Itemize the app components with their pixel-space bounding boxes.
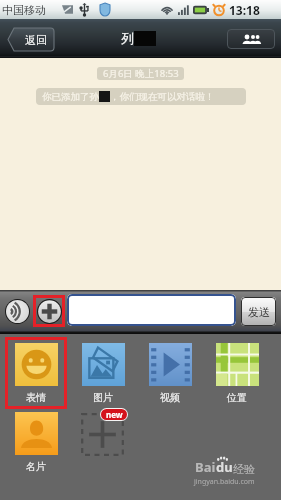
staticText: jingyan.baidu.com <box>194 477 255 487</box>
staticText: ，你们现在可以对话啦！ <box>110 91 215 103</box>
staticText: 视频 <box>160 391 180 404</box>
button[interactable]: Add shortcut <box>81 413 124 456</box>
staticText: 发送 <box>248 305 270 319</box>
button[interactable]: Voice message <box>5 299 30 324</box>
staticText: 13:18 <box>229 2 260 18</box>
button[interactable]: 表情 <box>5 343 67 404</box>
staticText: new <box>106 409 123 420</box>
staticText: 表情 <box>26 391 46 404</box>
button[interactable]: 位置 <box>206 343 268 404</box>
button[interactable]: 名片 <box>5 412 67 473</box>
staticText: 中国移动 <box>2 3 46 17</box>
staticText: 6月6日 晚上18:53 <box>103 67 179 80</box>
staticText: 位置 <box>227 391 247 404</box>
staticText: 列 <box>121 30 134 46</box>
button[interactable]: 视频 <box>139 343 201 404</box>
button[interactable]: More options <box>33 295 65 327</box>
button[interactable]: Group members <box>227 29 275 49</box>
staticText: Bai <box>195 458 216 476</box>
staticText: 你已添加了孙 <box>42 91 99 103</box>
button[interactable]: 图片 <box>72 343 134 404</box>
button[interactable]: 发送 <box>241 297 276 326</box>
button[interactable] <box>67 294 236 326</box>
staticText: 图片 <box>93 391 113 404</box>
staticText: 名片 <box>26 460 46 473</box>
staticText: 经验 <box>233 462 255 476</box>
button[interactable]: 返回 <box>7 28 54 51</box>
staticText: du <box>216 458 233 476</box>
staticText: 返回 <box>25 33 47 47</box>
